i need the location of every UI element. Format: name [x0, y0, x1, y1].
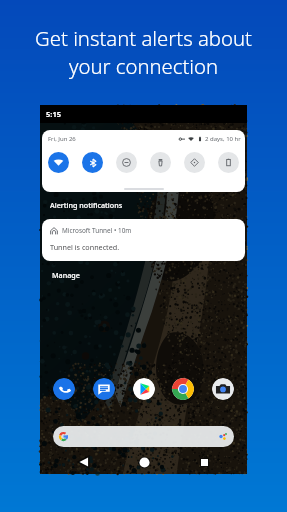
- button[interactable]: Chrome: [172, 378, 194, 400]
- button[interactable]: Search: [53, 426, 234, 447]
- button[interactable]: Play Store: [133, 378, 155, 400]
- button[interactable]: Messages: [93, 378, 115, 400]
- button[interactable]: Recents: [194, 452, 214, 472]
- staticText: Tunnel is connected.: [50, 242, 120, 252]
- button[interactable]: Flashlight: [150, 152, 171, 173]
- staticText: 2 days, 10 hr: [205, 135, 241, 143]
- button[interactable]: Phone: [53, 378, 75, 400]
- staticText: Fri, Jun 26: [48, 135, 76, 143]
- button[interactable]: Camera: [212, 378, 234, 400]
- button[interactable]: Do not disturb: [116, 152, 137, 173]
- staticText: Microsoft Tunnel • 10m: [62, 226, 132, 235]
- button[interactable]: Back: [74, 452, 94, 472]
- button[interactable]: Battery saver: [218, 152, 239, 173]
- button[interactable]: Bluetooth: [82, 152, 103, 173]
- button[interactable]: Microsoft Tunnel • 10m: [42, 219, 245, 261]
- button[interactable]: Auto-rotate: [184, 152, 205, 173]
- staticText: Get instant alerts about your connection: [35, 24, 252, 80]
- button[interactable]: Home: [134, 452, 154, 472]
- staticText: Alerting notifications: [50, 200, 123, 210]
- button[interactable]: Wi-Fi: [48, 152, 69, 173]
- staticText: Manage: [52, 270, 80, 280]
- staticText: 5:15: [46, 109, 61, 119]
